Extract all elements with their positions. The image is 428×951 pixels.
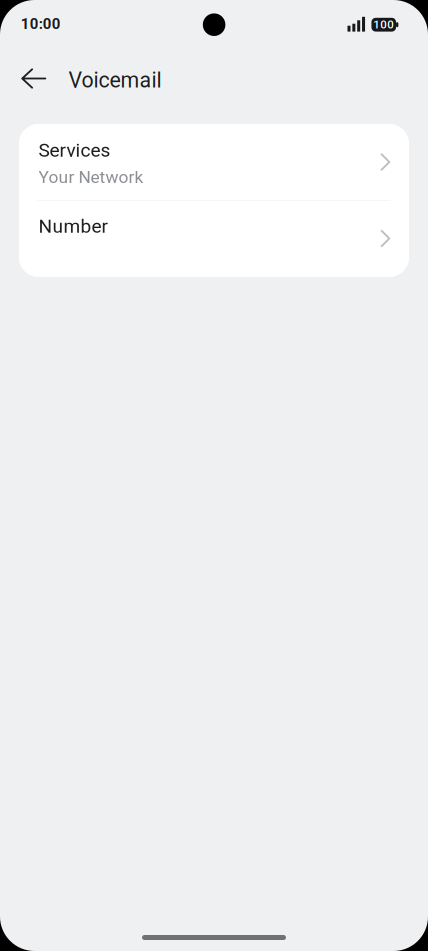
staticText: 100: [373, 18, 394, 31]
staticText: 10:00: [21, 15, 61, 33]
staticText: Services: [38, 139, 110, 161]
staticText: Voicemail: [68, 68, 161, 93]
staticText: Number: [38, 215, 107, 237]
button[interactable]: Services: [19, 124, 409, 200]
button[interactable]: Back: [12, 56, 56, 100]
button[interactable]: Number: [19, 200, 409, 277]
staticText: Your Network: [38, 167, 143, 187]
